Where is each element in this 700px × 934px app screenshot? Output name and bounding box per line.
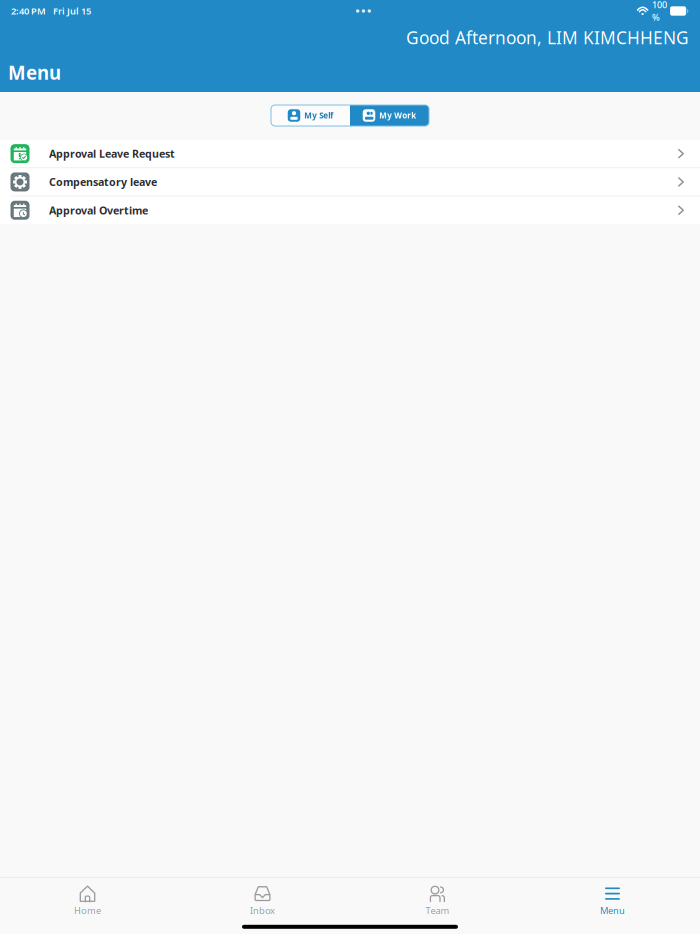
button[interactable]: Menu bbox=[525, 885, 700, 917]
button[interactable]: Approval Leave Request bbox=[0, 140, 700, 167]
staticText: Approval Leave Request bbox=[49, 147, 175, 161]
staticText: Good Afternoon, LIM KIMCHHENG bbox=[406, 26, 689, 49]
staticText: My Work bbox=[379, 110, 416, 121]
button[interactable]: Compensatory leave bbox=[0, 168, 700, 196]
staticText: 100% bbox=[652, 0, 667, 23]
staticText: Team bbox=[425, 904, 449, 916]
button[interactable]: Approval Overtime bbox=[0, 197, 700, 224]
staticText: Compensatory leave bbox=[49, 175, 157, 189]
button[interactable]: My Self bbox=[271, 105, 350, 126]
staticText: 2:40 PM bbox=[11, 5, 46, 17]
button[interactable]: Home bbox=[0, 885, 175, 917]
button[interactable]: Team bbox=[350, 885, 525, 917]
staticText: Menu bbox=[8, 60, 61, 85]
staticText: Approval Overtime bbox=[49, 203, 148, 217]
staticText: Menu bbox=[600, 904, 625, 916]
staticText: Home bbox=[74, 904, 101, 916]
staticText: Fri Jul 15 bbox=[53, 5, 91, 17]
staticText: Inbox bbox=[250, 904, 275, 916]
staticText: My Self bbox=[304, 110, 333, 121]
button[interactable]: My Work bbox=[350, 105, 429, 126]
button[interactable]: Inbox bbox=[175, 885, 350, 917]
